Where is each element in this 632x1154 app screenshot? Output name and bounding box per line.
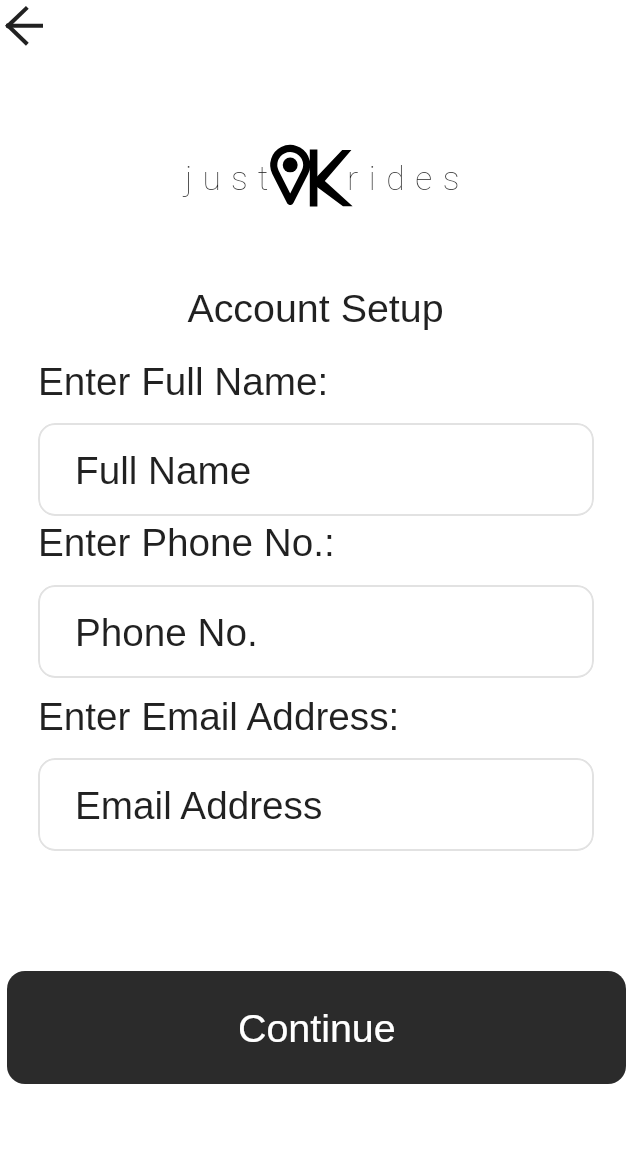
staticText: Phone No. — [75, 611, 258, 654]
staticText: Full Name — [75, 449, 252, 492]
staticText: just — [185, 159, 279, 198]
staticText: Enter Full Name: — [38, 360, 329, 403]
staticText: Enter Email Address: — [38, 695, 400, 738]
button[interactable]: Phone No. — [38, 585, 594, 678]
staticText: rides — [347, 159, 471, 198]
button[interactable]: Full Name — [38, 423, 594, 516]
button[interactable]: Continue — [7, 971, 626, 1084]
button[interactable]: Email Address — [38, 758, 594, 851]
staticText: Continue — [238, 1006, 396, 1050]
staticText: Email Address — [75, 784, 323, 827]
staticText: Account Setup — [187, 286, 444, 330]
staticText: Enter Phone No.: — [38, 521, 335, 564]
button[interactable]: Back — [0, 0, 52, 52]
